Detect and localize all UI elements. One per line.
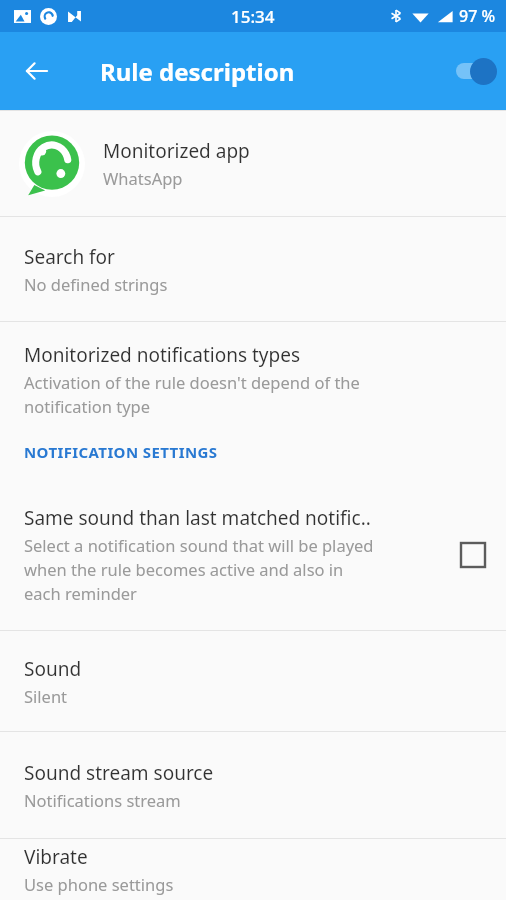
button[interactable]: Sound — [0, 631, 506, 731]
button[interactable]: Search for — [0, 217, 506, 321]
button[interactable]: Same sound checkbox — [458, 540, 488, 570]
button[interactable]: Same sound than last matched notific.. — [0, 480, 506, 630]
staticText: Sound stream source — [24, 760, 214, 786]
staticText: Use phone settings — [24, 873, 174, 895]
staticText: Select a notification sound that will be… — [24, 534, 374, 605]
button[interactable]: Sound stream source — [0, 732, 506, 838]
staticText: Same sound than last matched notific.. — [24, 505, 371, 531]
staticText: 15:34 — [231, 5, 275, 28]
button[interactable]: Enable rule — [452, 48, 506, 94]
staticText: WhatsApp — [103, 167, 183, 189]
staticText: Vibrate — [24, 844, 88, 870]
staticText: Monitorized notifications types — [24, 342, 301, 368]
staticText: Rule description — [100, 55, 295, 88]
staticText: Notifications stream — [24, 789, 181, 811]
button[interactable]: Monitorized notifications types — [0, 322, 506, 424]
staticText: No defined strings — [24, 273, 168, 295]
staticText: NOTIFICATION SETTINGS — [24, 442, 218, 462]
button[interactable]: Monitorized app — [0, 111, 506, 216]
staticText: Monitorized app — [103, 138, 250, 164]
staticText: Activation of the rule doesn't depend of… — [24, 371, 360, 418]
staticText: Sound — [24, 656, 82, 682]
button[interactable]: Vibrate — [0, 839, 506, 900]
staticText: Search for — [24, 244, 115, 270]
staticText: 97 % — [459, 5, 496, 27]
button[interactable]: Back — [14, 48, 60, 94]
staticText: Silent — [24, 685, 68, 707]
